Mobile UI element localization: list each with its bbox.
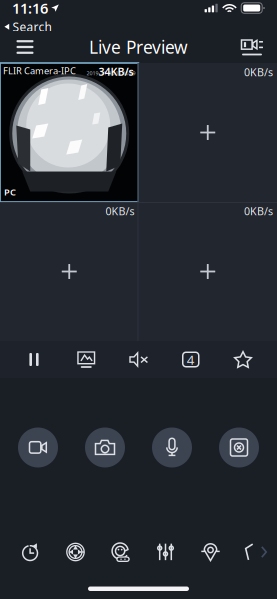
button[interactable]: Device location bbox=[188, 537, 233, 567]
staticText: 34KB/s bbox=[98, 64, 133, 79]
button[interactable]: Split layout 4 bbox=[166, 341, 216, 377]
button[interactable]: Direction control bbox=[53, 537, 98, 567]
staticText: FLIR Camera-IPC bbox=[3, 64, 76, 77]
staticText: 0KB/s bbox=[105, 204, 134, 218]
button[interactable]: Stream quality bbox=[61, 341, 111, 377]
staticText: PC bbox=[4, 186, 16, 198]
button[interactable]: Menu bbox=[1, 31, 49, 63]
button[interactable]: Camera list bbox=[228, 31, 276, 63]
staticText: Live Preview bbox=[89, 35, 188, 58]
button[interactable]: Remote setting bbox=[98, 537, 143, 567]
staticText: 11:16 bbox=[12, 0, 48, 18]
staticText: 0KB/s bbox=[244, 204, 273, 218]
button[interactable]: Settings bbox=[143, 537, 188, 567]
staticText: 4 bbox=[187, 351, 195, 368]
button[interactable]: Pause bbox=[9, 341, 59, 377]
button[interactable]: Mute bbox=[113, 341, 163, 377]
staticText: Search bbox=[12, 19, 51, 35]
button[interactable]: PTZ bbox=[211, 419, 267, 475]
staticText: 2019-11-15 11:16:09 bbox=[86, 69, 135, 77]
button[interactable]: More tabs bbox=[233, 537, 277, 567]
button[interactable]: Playback bbox=[8, 537, 53, 567]
button[interactable]: Record bbox=[10, 419, 66, 475]
button[interactable]: Snapshot bbox=[77, 419, 133, 475]
staticText: 0KB/s bbox=[244, 65, 273, 79]
button[interactable]: Favorite bbox=[218, 341, 268, 377]
button[interactable]: Two-way talk bbox=[144, 419, 200, 475]
